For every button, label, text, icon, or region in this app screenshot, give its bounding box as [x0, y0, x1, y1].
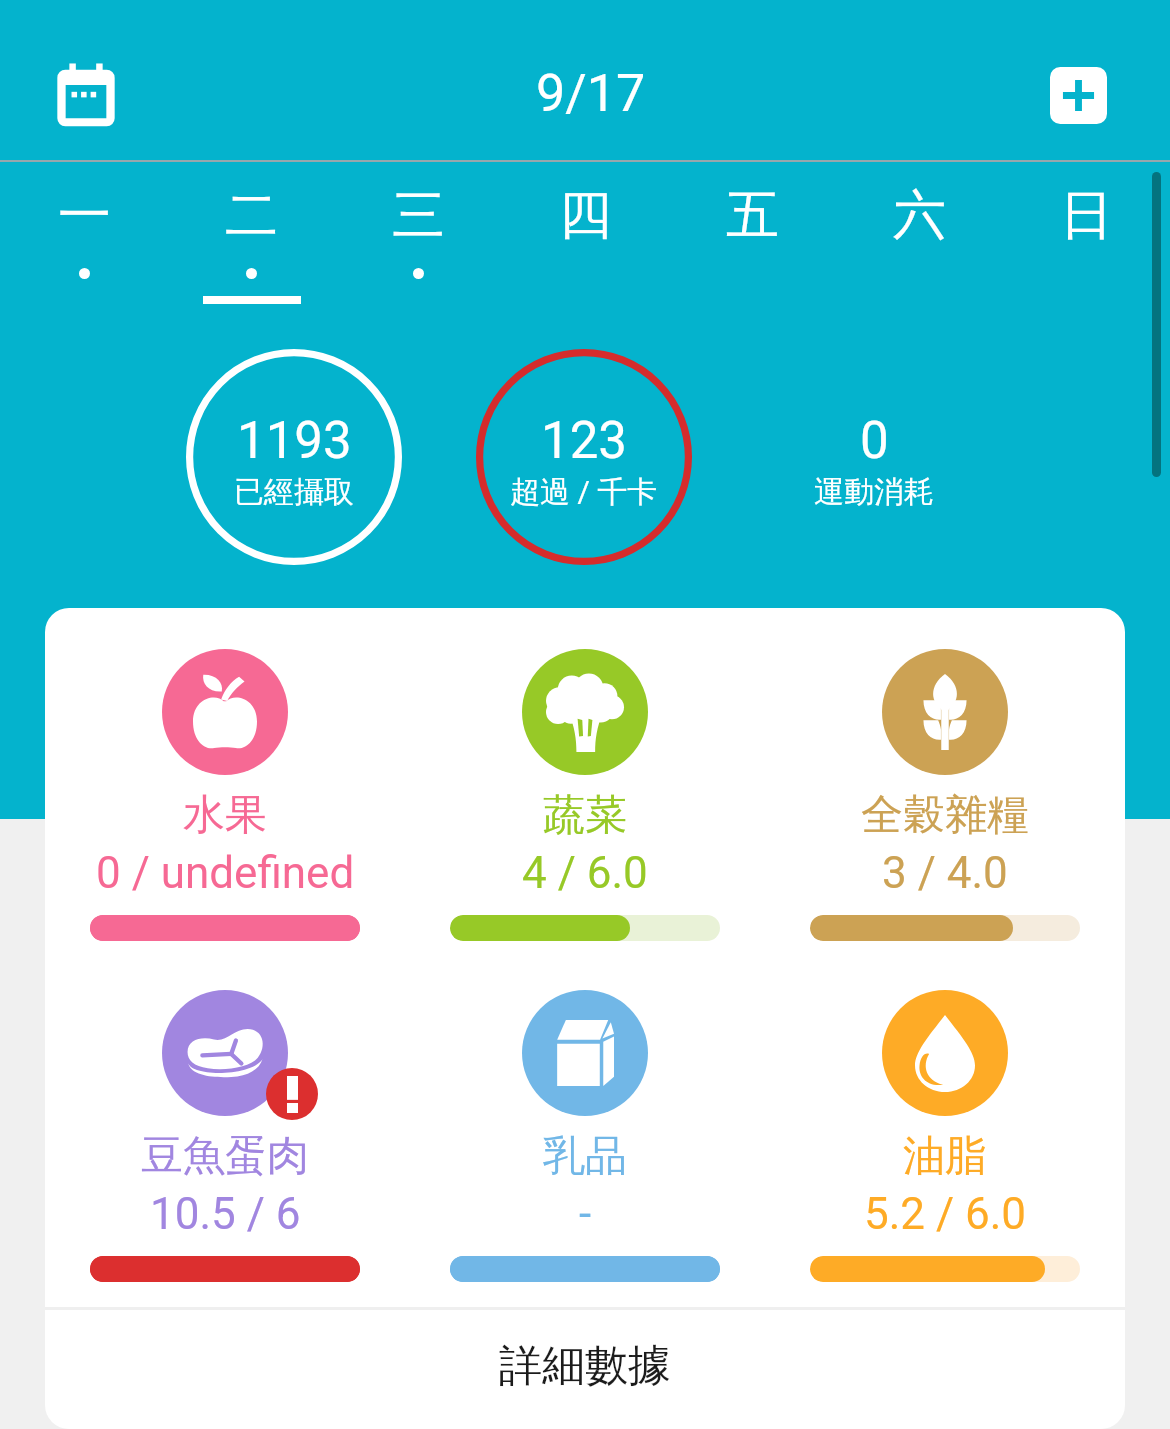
button[interactable]: 123	[439, 349, 729, 567]
staticText: 詳細數據	[499, 1339, 671, 1393]
staticText: 0 / undefined	[96, 847, 355, 899]
staticText: 10.5 / 6	[150, 1188, 301, 1240]
button[interactable]: 六	[836, 0, 1003, 305]
staticText: 4 / 6.0	[522, 847, 648, 899]
button[interactable]: Calendar	[41, 53, 131, 143]
staticText: 蔬菜	[543, 789, 627, 842]
staticText: 已經攝取	[234, 473, 354, 511]
staticText: 運動消耗	[814, 473, 934, 511]
staticText: 豆魚蛋肉	[141, 1130, 309, 1183]
staticText: 3 / 4.0	[882, 847, 1008, 899]
staticText: 油脂	[903, 1130, 987, 1183]
staticText: 六	[893, 182, 946, 249]
button[interactable]: 詳細數據	[45, 1310, 1125, 1426]
button[interactable]: 二	[168, 0, 335, 305]
button[interactable]: 水果	[45, 649, 405, 941]
button[interactable]: 油脂	[765, 990, 1125, 1282]
button[interactable]: 乳品	[405, 990, 765, 1282]
staticText: 二	[225, 182, 278, 249]
button[interactable]: 五	[669, 0, 836, 305]
staticText: 四	[559, 182, 612, 249]
staticText: 一	[58, 182, 111, 249]
button[interactable]: 蔬菜	[405, 649, 765, 941]
staticText: 乳品	[543, 1130, 627, 1183]
staticText: 123	[541, 411, 627, 471]
button[interactable]: Add	[1033, 50, 1123, 140]
button[interactable]: 日	[1003, 0, 1170, 305]
staticText: 5.2 / 6.0	[864, 1188, 1027, 1240]
button[interactable]: 全穀雜糧	[765, 649, 1125, 941]
button[interactable]: 三	[335, 0, 502, 305]
staticText: 超過 / 千卡	[510, 473, 658, 511]
button[interactable]: 四	[502, 0, 669, 305]
button[interactable]: 1193	[149, 349, 439, 567]
staticText: 0	[860, 411, 889, 471]
staticText: -	[579, 1188, 592, 1240]
staticText: 三	[392, 182, 445, 249]
button[interactable]: 一	[0, 0, 168, 305]
staticText: 全穀雜糧	[861, 789, 1029, 842]
button[interactable]: 豆魚蛋肉	[45, 990, 405, 1282]
staticText: 日	[1060, 182, 1113, 249]
button[interactable]: 0	[729, 349, 1019, 567]
staticText: 水果	[183, 789, 267, 842]
staticText: 9/17	[536, 63, 646, 124]
staticText: 五	[726, 182, 779, 249]
staticText: 1193	[237, 411, 352, 471]
